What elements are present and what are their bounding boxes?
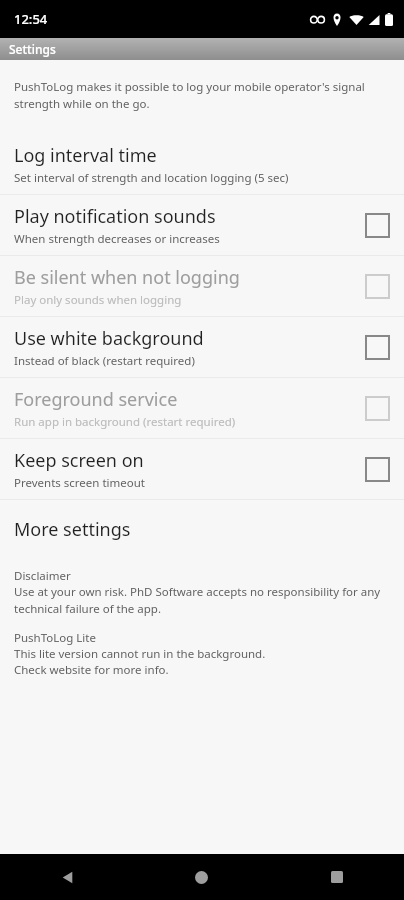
button[interactable]: Recent apps	[269, 854, 404, 900]
button[interactable]: Play notification sounds	[0, 195, 404, 255]
button[interactable]: Foreground service	[0, 378, 404, 438]
staticText: Instead of black (restart required)	[14, 353, 195, 369]
staticText: PushToLog makes it possible to log your …	[14, 79, 378, 112]
staticText: Check website for more info.	[14, 662, 169, 678]
staticText: This lite version cannot run in the back…	[14, 646, 266, 662]
button[interactable]: Log interval time	[0, 134, 404, 194]
staticText: Use white background	[14, 326, 204, 351]
staticText: Disclaimer	[14, 568, 71, 584]
staticText: Be silent when not logging	[14, 265, 240, 290]
button[interactable]: Be silent when not logging	[0, 256, 404, 316]
staticText: Use at your own risk. PhD Software accep…	[14, 584, 392, 616]
staticText: Set interval of strength and location lo…	[14, 170, 289, 186]
button[interactable]: Keep screen on	[365, 457, 390, 482]
button[interactable]: Use white background	[365, 335, 390, 360]
staticText: Foreground service	[14, 387, 178, 412]
button[interactable]: Foreground service	[365, 396, 390, 421]
staticText: Prevents screen timeout	[14, 475, 146, 491]
staticText: Play notification sounds	[14, 204, 216, 229]
staticText: Play only sounds when logging	[14, 292, 182, 308]
staticText: Run app in background (restart required)	[14, 414, 236, 430]
button[interactable]: Home	[134, 854, 269, 900]
staticText: Keep screen on	[14, 448, 144, 473]
staticText: 12:54	[14, 10, 48, 28]
button[interactable]: Be silent when not logging	[365, 274, 390, 299]
staticText: More settings	[14, 517, 131, 542]
button[interactable]: Play notification sounds	[365, 213, 390, 238]
staticText: Settings	[9, 41, 56, 57]
button[interactable]: Keep screen on	[0, 439, 404, 499]
staticText: Log interval time	[14, 143, 157, 168]
staticText: PushToLog Lite	[14, 630, 96, 646]
button[interactable]: Back	[0, 854, 134, 900]
staticText: When strength decreases or increases	[14, 231, 220, 247]
button[interactable]: Use white background	[0, 317, 404, 377]
